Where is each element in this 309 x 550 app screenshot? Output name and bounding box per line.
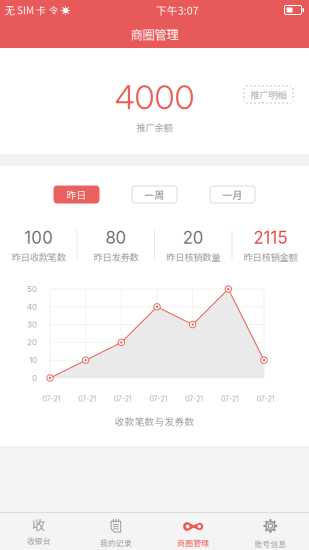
staticText: 昨日核销金额 bbox=[243, 250, 297, 263]
staticText: 20 bbox=[27, 338, 37, 347]
staticText: 100 bbox=[24, 228, 53, 248]
button[interactable]: 推广明细 bbox=[244, 86, 293, 103]
staticText: 80 bbox=[105, 228, 126, 248]
staticText: 4000 bbox=[114, 77, 194, 117]
staticText: 30 bbox=[27, 320, 37, 329]
staticText: 07-21 bbox=[42, 395, 60, 403]
button[interactable]: 商圈管理 bbox=[154, 513, 232, 550]
staticText: 07-21 bbox=[150, 395, 168, 403]
staticText: 无 SIM 卡 bbox=[5, 3, 46, 17]
staticText: 50 bbox=[27, 284, 37, 294]
staticText: 昨日收款笔数 bbox=[12, 250, 66, 263]
staticText: 0 bbox=[32, 373, 37, 383]
staticText: 推广余额 bbox=[136, 120, 172, 134]
staticText: 07-21 bbox=[257, 395, 275, 403]
staticText: 推广明细 bbox=[250, 88, 286, 101]
button[interactable]: 昨日 bbox=[54, 186, 99, 203]
button[interactable]: 一月 bbox=[210, 186, 255, 203]
staticText: 07-21 bbox=[221, 395, 239, 403]
staticText: 40 bbox=[27, 302, 37, 312]
staticText: 我的记录 bbox=[100, 537, 132, 548]
staticText: 收银台 bbox=[27, 535, 51, 546]
staticText: 收款笔数与发券数 bbox=[114, 414, 194, 428]
staticText: ☀ bbox=[61, 3, 70, 17]
button[interactable]: 一周 bbox=[132, 186, 177, 203]
staticText: 收 bbox=[32, 515, 45, 534]
button[interactable]: 账号信息 bbox=[232, 513, 309, 550]
staticText: 商圈管理 bbox=[130, 25, 178, 43]
staticText: 令 bbox=[49, 3, 58, 17]
staticText: 一周 bbox=[144, 187, 164, 202]
button[interactable]: 我的记录 bbox=[77, 513, 154, 550]
staticText: 昨日核销数量 bbox=[166, 250, 220, 263]
staticText: 07-21 bbox=[114, 395, 132, 403]
staticText: 昨日 bbox=[66, 187, 86, 202]
staticText: 10 bbox=[29, 355, 37, 365]
staticText: 商圈管理 bbox=[177, 537, 209, 548]
staticText: 07-21 bbox=[185, 395, 203, 403]
staticText: 下午3:07 bbox=[156, 2, 199, 18]
staticText: 昨日发券数 bbox=[93, 250, 138, 263]
staticText: 07-21 bbox=[78, 395, 96, 403]
staticText: 一月 bbox=[222, 187, 242, 202]
staticText: 2115 bbox=[253, 228, 287, 248]
button[interactable]: 收 bbox=[0, 513, 77, 550]
staticText: 20 bbox=[183, 228, 204, 248]
staticText: 账号信息 bbox=[254, 538, 286, 549]
